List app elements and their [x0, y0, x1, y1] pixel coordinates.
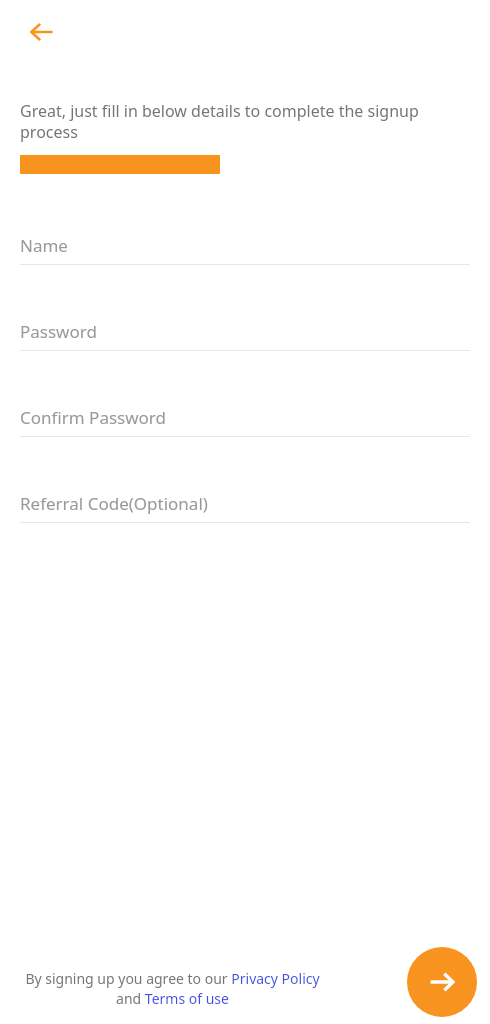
- staticText: Referral Code(Optional): [20, 492, 208, 515]
- staticText: By signing up you agree to our Privacy P…: [20, 969, 325, 1008]
- button[interactable]: Continue: [407, 947, 477, 1017]
- staticText: Great, just fill in below details to com…: [20, 100, 470, 143]
- button[interactable]: Back: [19, 10, 63, 54]
- button[interactable]: By signing up you agree to our Privacy P…: [20, 969, 325, 1008]
- button[interactable]: Confirm Password: [20, 378, 470, 464]
- staticText: Confirm Password: [20, 406, 166, 429]
- staticText: Password: [20, 320, 97, 343]
- button[interactable]: Password: [20, 292, 470, 378]
- button[interactable]: Name: [20, 206, 470, 292]
- button[interactable]: Referral Code(Optional): [20, 464, 470, 550]
- staticText: Name: [20, 234, 68, 257]
